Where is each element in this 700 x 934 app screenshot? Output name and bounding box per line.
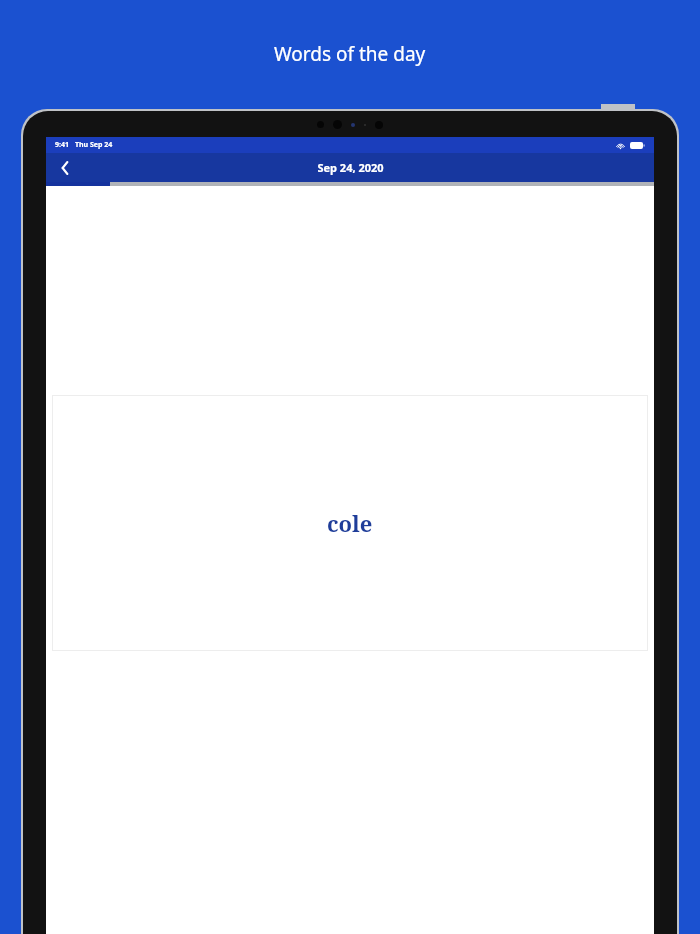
staticText: Sep 24, 2020 (317, 160, 384, 175)
staticText: Thu Sep 24 (75, 140, 113, 150)
staticText: Words of the day (274, 41, 426, 67)
button[interactable]: Back (46, 153, 84, 182)
staticText: cole (327, 508, 373, 538)
staticText: 9:41 (55, 140, 69, 150)
button[interactable]: cole (52, 395, 648, 651)
